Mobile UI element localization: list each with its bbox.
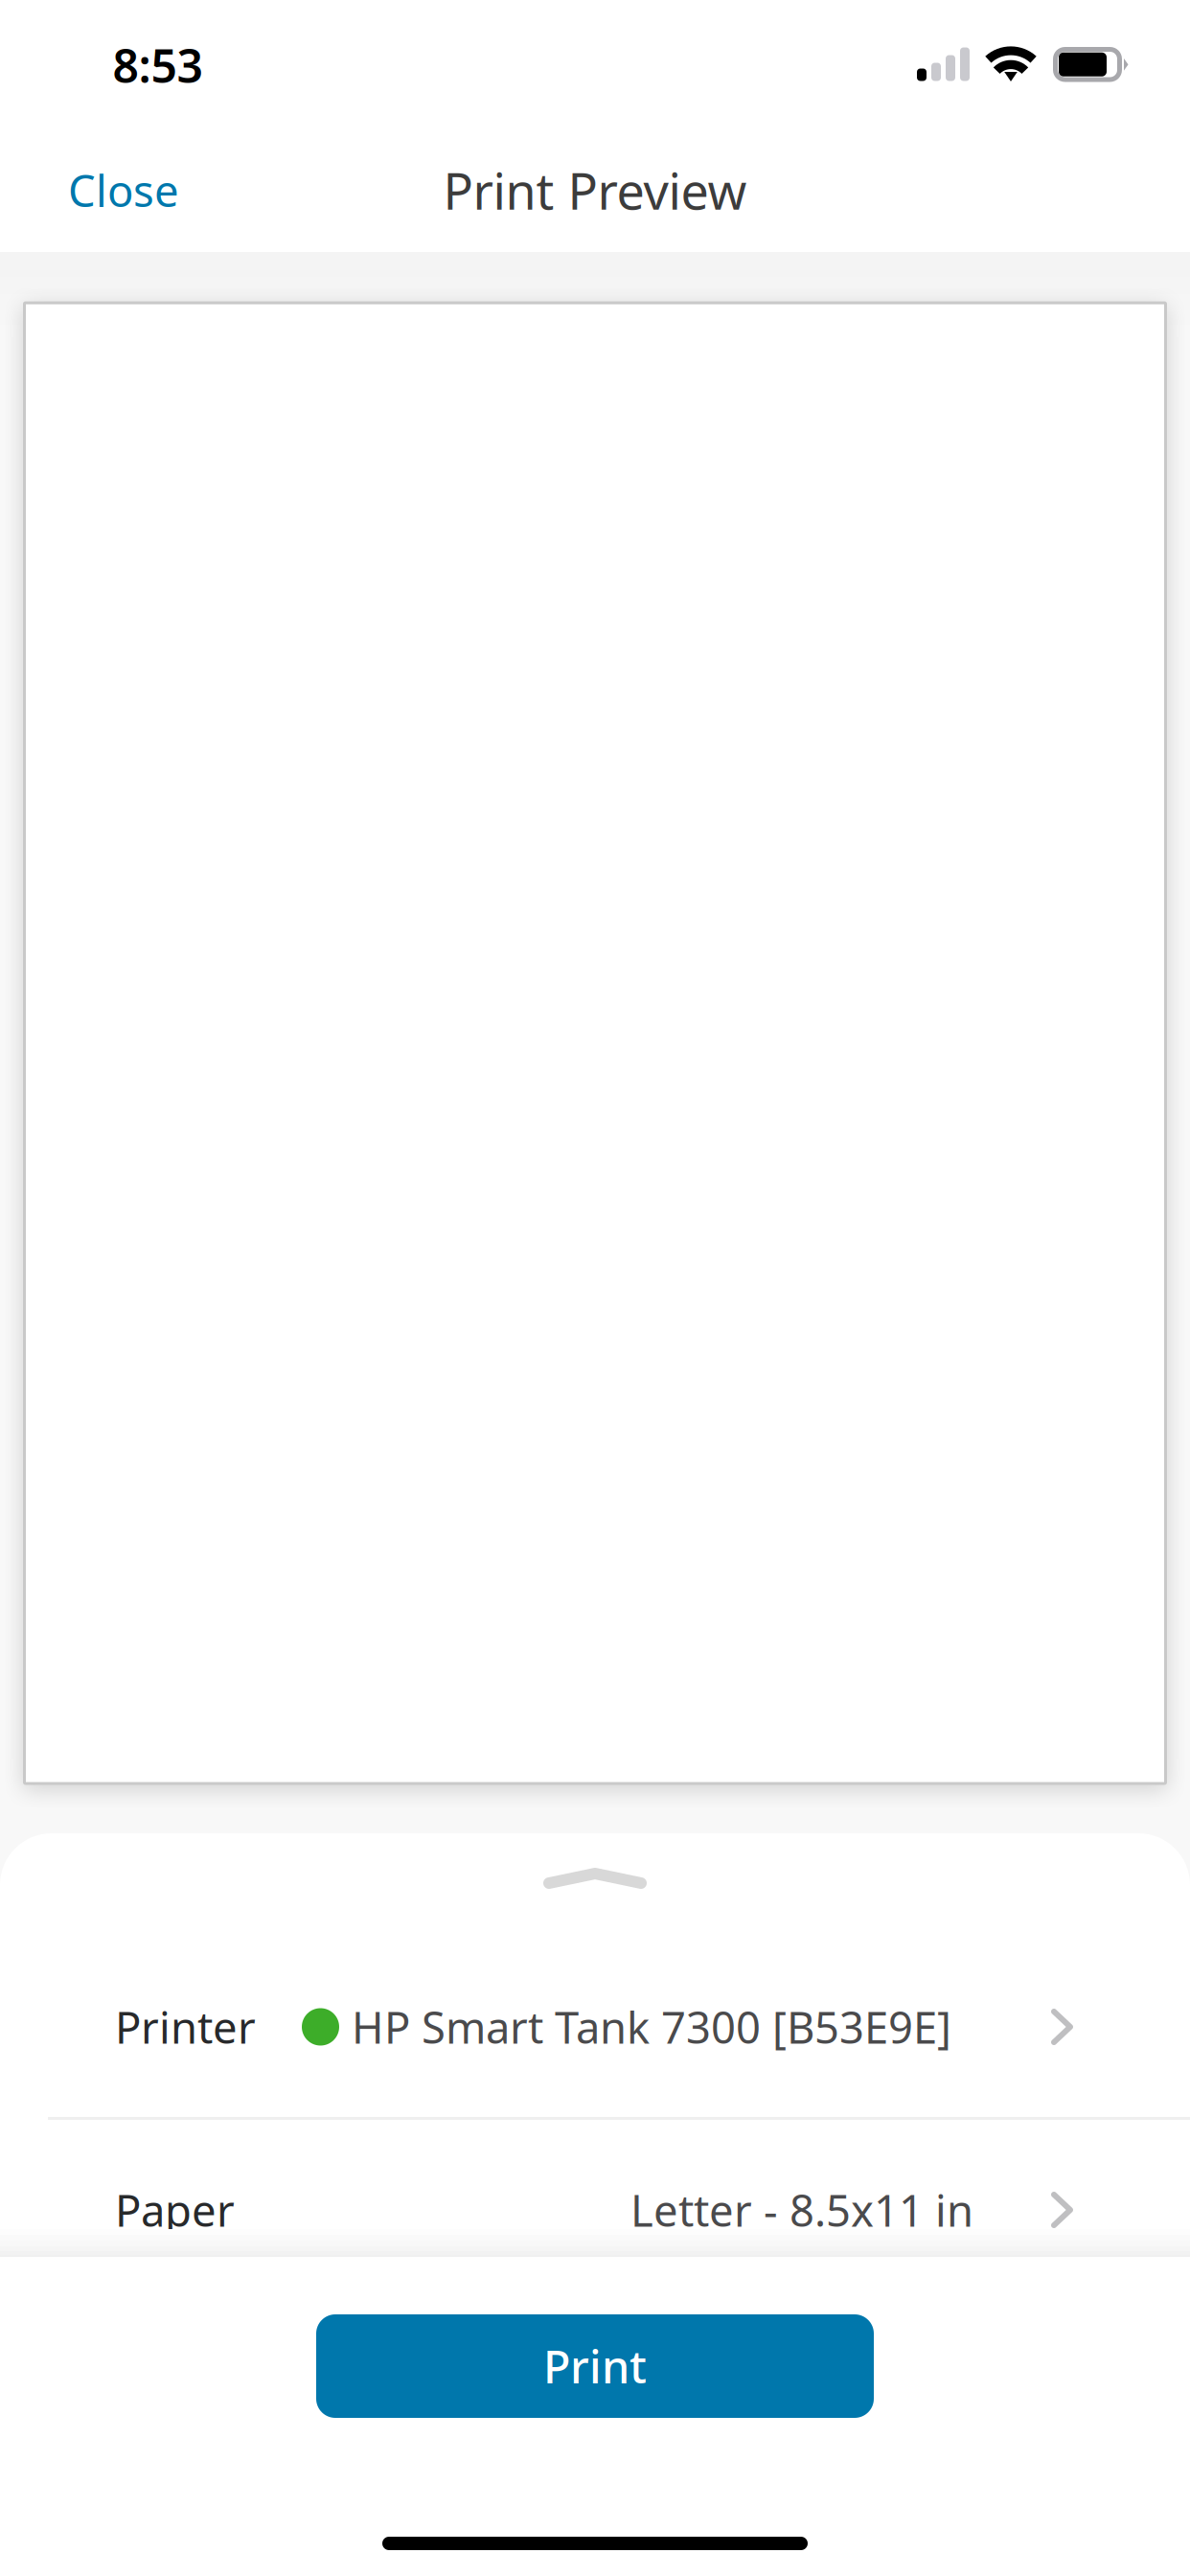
staticText: Close (68, 161, 179, 219)
staticText: Letter - 8.5x11 in (630, 2181, 973, 2239)
button[interactable]: Close (56, 137, 192, 244)
button[interactable]: Printer (0, 1937, 1190, 2117)
button[interactable]: Paper (0, 2120, 1190, 2300)
staticText: 8:53 (113, 35, 203, 96)
staticText: Paper (115, 2181, 235, 2239)
staticText: Printer (115, 1998, 256, 2056)
button[interactable]: Print (316, 2314, 874, 2418)
staticText: Print (543, 2336, 647, 2396)
staticText: HP Smart Tank 7300 [B53E9E] (352, 1998, 951, 2056)
staticText: Print Preview (443, 157, 747, 223)
